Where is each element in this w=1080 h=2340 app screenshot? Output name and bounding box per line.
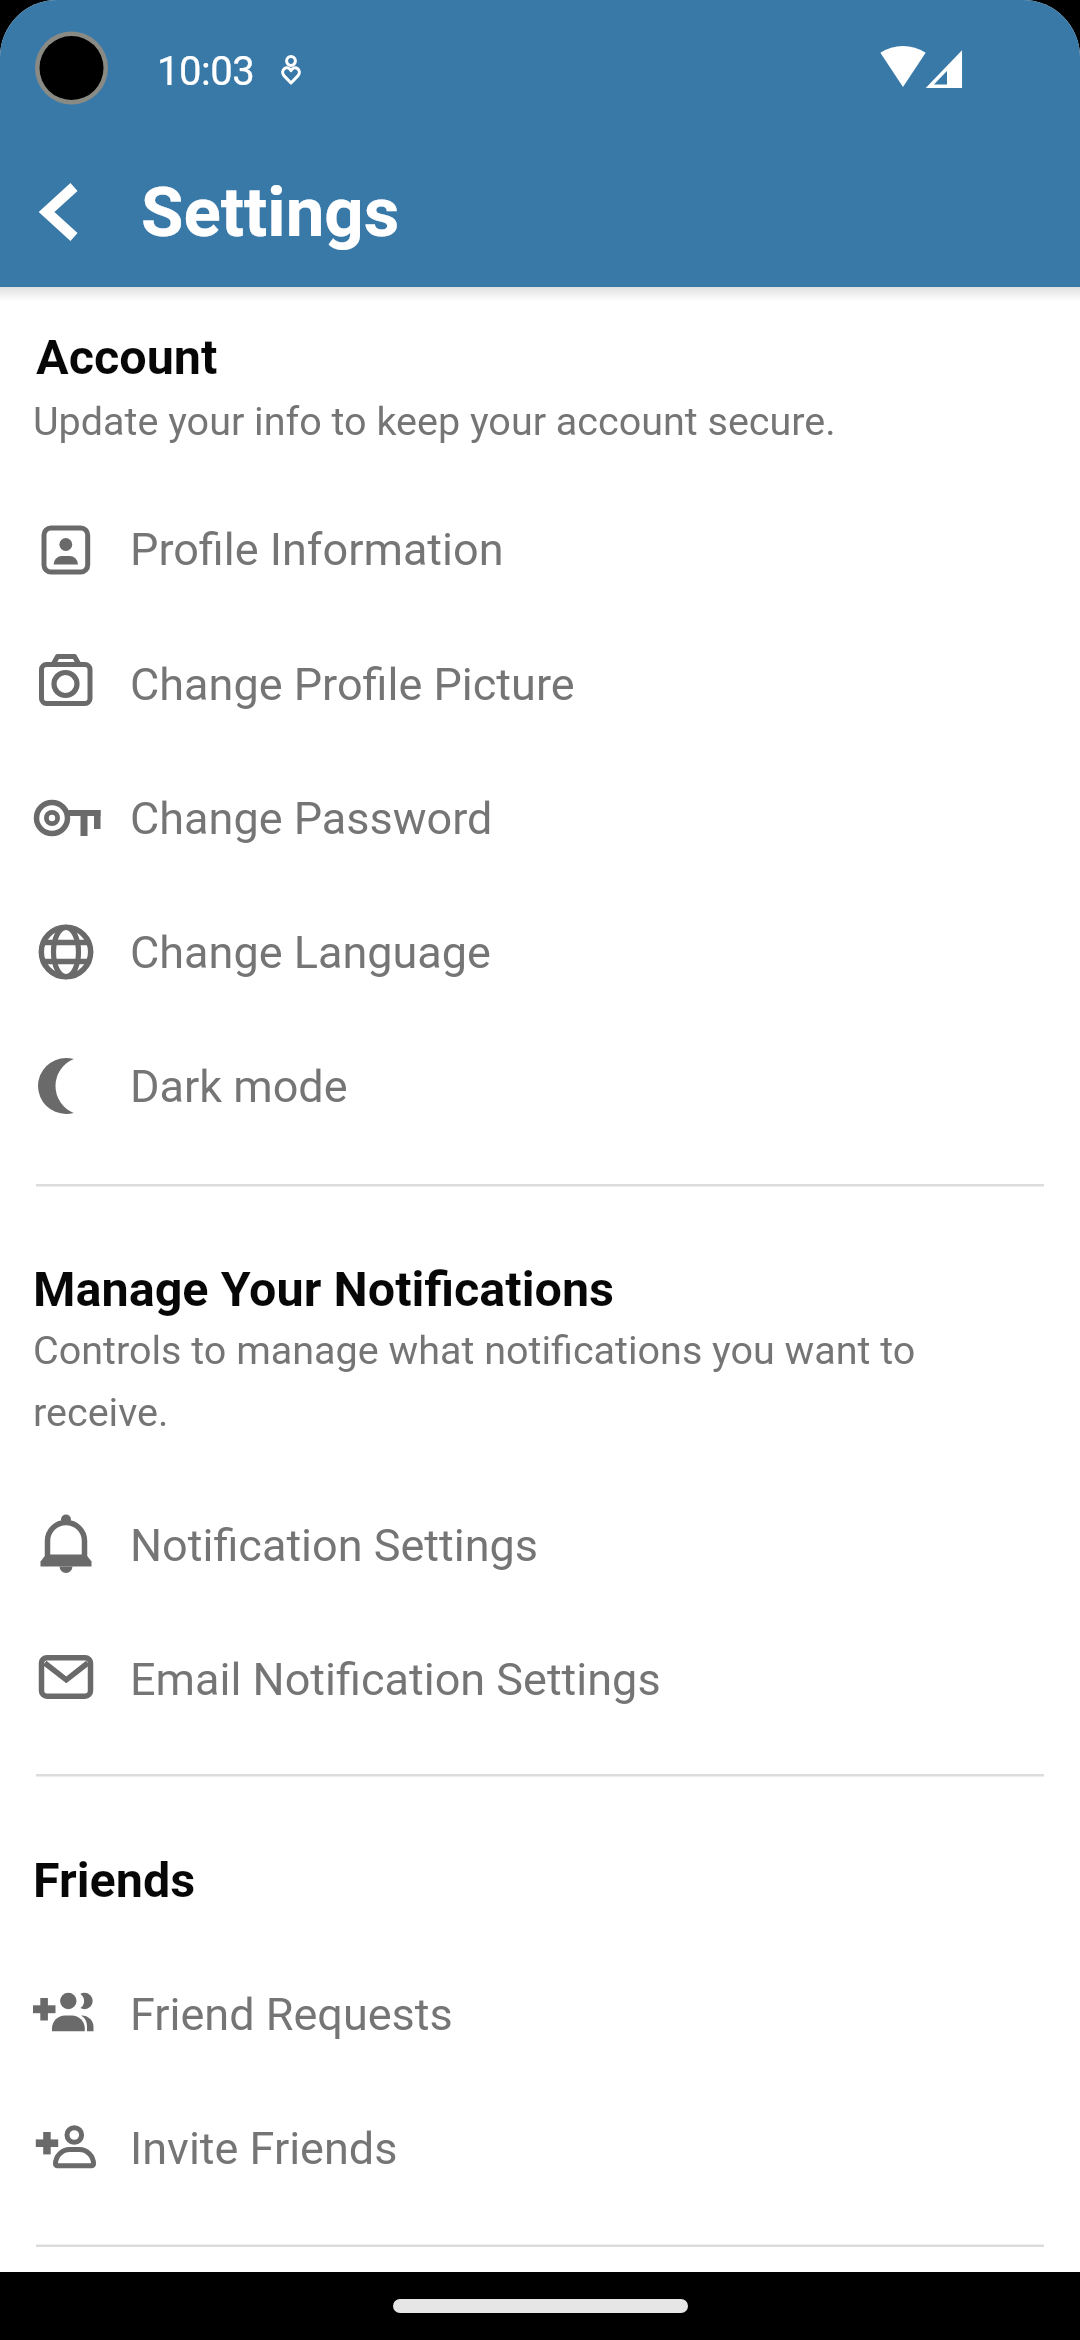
staticText: Change Language bbox=[130, 926, 491, 979]
staticText: receive. bbox=[33, 1389, 169, 1435]
staticText: Controls to manage what notifications yo… bbox=[33, 1327, 916, 1373]
staticText: Update your info to keep your account se… bbox=[33, 398, 836, 444]
staticText: Invite Friends bbox=[130, 2122, 398, 2175]
button[interactable]: Friend Requests bbox=[0, 1947, 1080, 2081]
staticText: Friend Requests bbox=[130, 1988, 453, 2041]
staticText: Change Profile Picture bbox=[130, 658, 575, 711]
staticText: Settings bbox=[141, 172, 400, 253]
button[interactable] bbox=[20, 174, 120, 250]
button[interactable]: Notification Settings bbox=[0, 1478, 1080, 1612]
staticText: Email Notification Settings bbox=[130, 1653, 661, 1706]
button[interactable]: Email Notification Settings bbox=[0, 1612, 1080, 1746]
staticText: Account bbox=[36, 329, 218, 386]
button[interactable]: Profile Information bbox=[0, 482, 1080, 616]
button[interactable]: Invite Friends bbox=[0, 2081, 1080, 2215]
staticText: Manage Your Notifications bbox=[33, 1261, 615, 1318]
staticText: Notification Settings bbox=[130, 1519, 539, 1572]
staticText: Dark mode bbox=[130, 1060, 348, 1113]
button[interactable]: Change Password bbox=[0, 751, 1080, 885]
staticText: Friends bbox=[33, 1852, 196, 1909]
staticText: Change Password bbox=[130, 792, 493, 845]
button[interactable]: Change Language bbox=[0, 885, 1080, 1019]
button[interactable]: Dark mode bbox=[0, 1019, 1080, 1153]
button[interactable]: Change Profile Picture bbox=[0, 617, 1080, 751]
staticText: Profile Information bbox=[130, 523, 504, 576]
staticText: 10:03 bbox=[157, 48, 255, 95]
